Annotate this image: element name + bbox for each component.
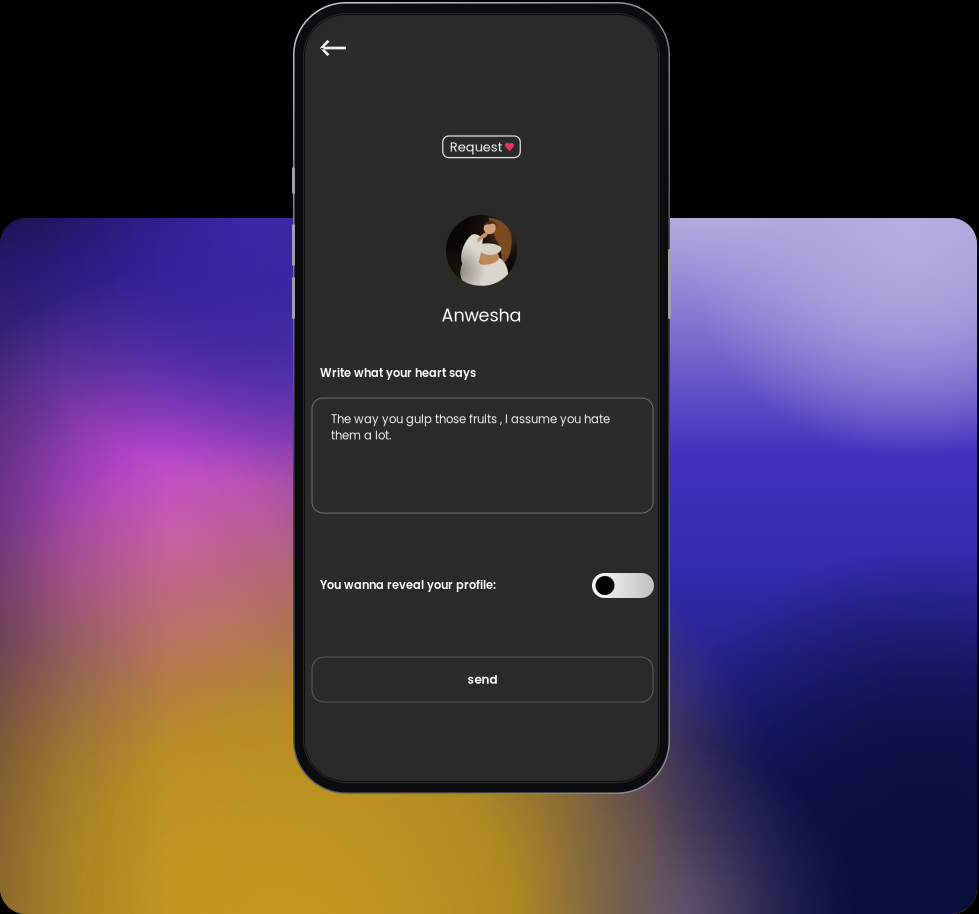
- staticText: The way you gulp those fruits , I assume…: [331, 411, 610, 443]
- button[interactable]: Back: [312, 31, 354, 65]
- staticText: Write what your heart says: [320, 365, 476, 381]
- staticText: Request: [450, 138, 503, 156]
- button[interactable]: Reveal your profile toggle: [592, 573, 654, 598]
- staticText: Anwesha: [441, 303, 521, 328]
- button[interactable]: send: [312, 657, 653, 702]
- staticText: You wanna reveal your profile:: [320, 577, 496, 593]
- staticText: send: [467, 671, 497, 688]
- button[interactable]: Request: [443, 136, 520, 158]
